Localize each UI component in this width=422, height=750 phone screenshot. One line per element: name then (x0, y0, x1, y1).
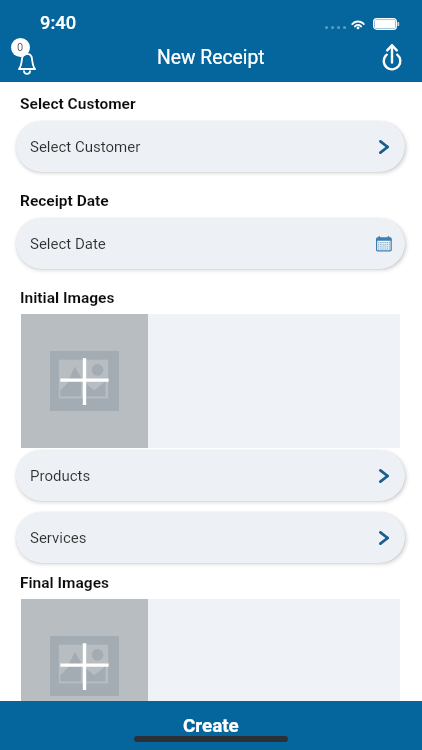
staticText: Receipt Date (20, 192, 109, 210)
staticText: 0 (17, 41, 24, 54)
button[interactable]: Logout (371, 35, 411, 75)
staticText: Initial Images (20, 289, 115, 307)
staticText: Select Date (30, 235, 106, 253)
button[interactable]: Notifications (6, 34, 48, 76)
button[interactable]: Add image (21, 599, 148, 733)
staticText: 9:40 (40, 12, 77, 33)
button[interactable]: Select Customer (16, 121, 405, 172)
button[interactable]: Create (0, 701, 422, 750)
staticText: Final Images (20, 574, 110, 592)
staticText: Select Customer (20, 95, 136, 113)
button[interactable]: Select Date (16, 218, 405, 269)
staticText: Select Customer (30, 138, 141, 156)
staticText: Products (30, 467, 91, 485)
button[interactable]: Products (16, 450, 405, 501)
staticText: Services (30, 529, 87, 547)
button[interactable]: Add image (21, 314, 148, 448)
staticText: New Receipt (157, 46, 265, 69)
staticText: Create (183, 715, 239, 737)
button[interactable]: Services (16, 512, 405, 563)
